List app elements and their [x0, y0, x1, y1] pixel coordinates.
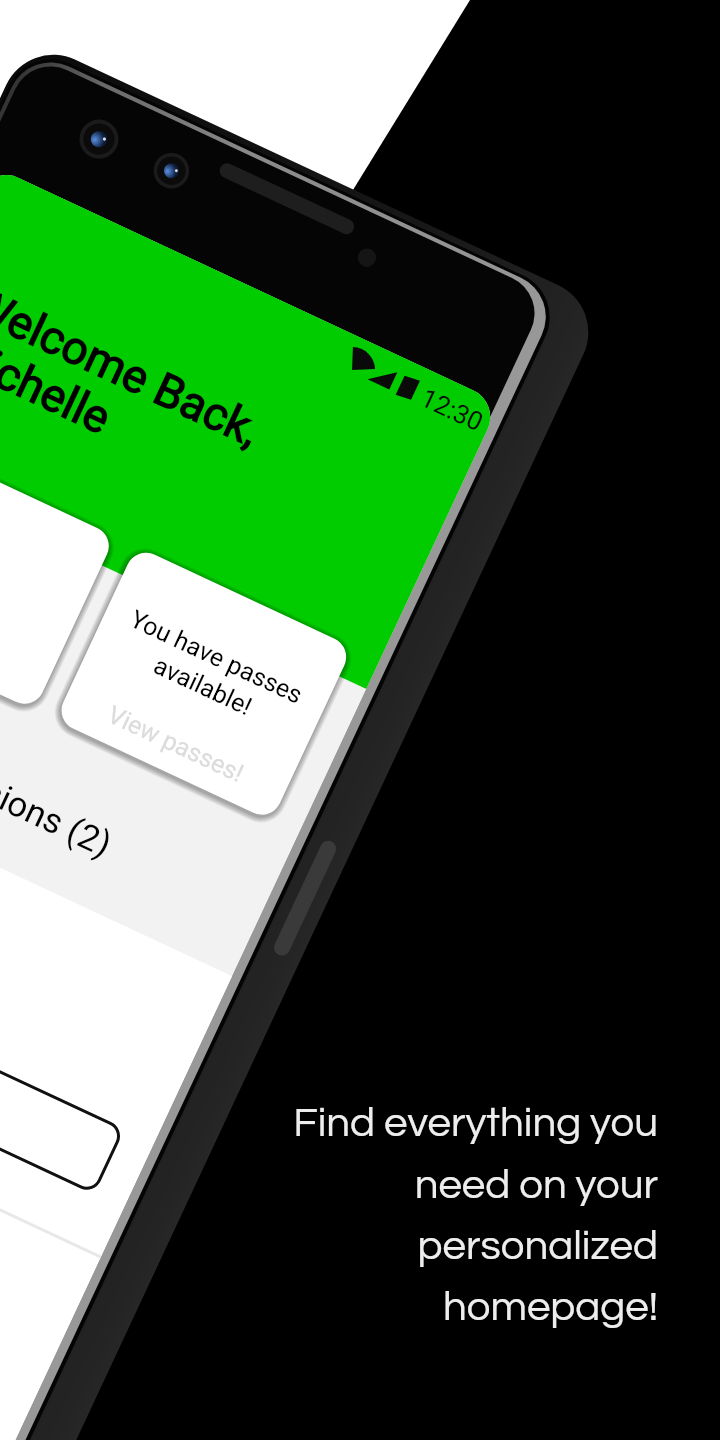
staticText: Find everything you need on your persona… [293, 1102, 658, 1328]
